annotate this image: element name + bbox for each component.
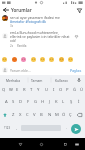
button[interactable]: Recent apps (59, 138, 71, 150)
button[interactable]: S (10, 96, 17, 107)
staticText: C (26, 112, 29, 118)
button[interactable]: Emoji reaction (10, 55, 19, 64)
button[interactable]: J (46, 96, 53, 107)
staticText: W (9, 87, 13, 93)
button[interactable]: O (57, 84, 64, 95)
staticText: D (19, 99, 23, 105)
button[interactable]: Shift (0, 109, 10, 120)
staticText: T (30, 87, 33, 93)
button[interactable]: Kullanıcı (49, 75, 73, 85)
staticText: Y (37, 87, 40, 93)
button[interactable]: Y (35, 84, 42, 95)
button[interactable]: Emoji reaction (66, 55, 75, 64)
staticText: F (27, 99, 30, 105)
button[interactable]: G (32, 96, 39, 107)
button[interactable]: Tamam (25, 75, 49, 85)
button[interactable]: Filter (73, 5, 85, 15)
button[interactable]: Send (71, 124, 81, 134)
button[interactable]: L (60, 96, 67, 107)
button[interactable]: Ş (68, 96, 75, 107)
button[interactable]: Emoji reaction (0, 55, 9, 64)
button[interactable]: W (7, 84, 14, 95)
staticText: J (49, 99, 51, 105)
staticText: X (19, 112, 22, 118)
staticText: cok! (10, 38, 17, 42)
staticText: Merhaba (6, 78, 20, 82)
button[interactable]: V (31, 109, 38, 120)
button[interactable]: I (50, 84, 57, 95)
staticText: R (23, 87, 26, 93)
button[interactable]: Like (73, 33, 80, 40)
button[interactable]: Merhaba (0, 75, 25, 85)
staticText: Ö (62, 112, 66, 118)
staticText: ellerink ve paylasim icin tebrikler niha… (10, 34, 70, 38)
button[interactable]: D (17, 96, 24, 107)
staticText: Ç (69, 112, 72, 118)
staticText: Ş (70, 99, 73, 105)
button[interactable]: sen ai ayse yasamarn ifadesi me (10, 15, 74, 28)
button[interactable]: Emoji reaction (57, 55, 66, 64)
staticText: M (55, 112, 59, 118)
button[interactable]: R (21, 84, 28, 95)
button[interactable]: N (46, 109, 53, 120)
button[interactable]: B (38, 109, 45, 120)
button[interactable]: Ğ (71, 84, 78, 95)
button[interactable]: Yorum ekle... (10, 68, 70, 73)
button[interactable]: Ü (78, 84, 85, 95)
button[interactable]: Backspace (74, 109, 85, 120)
button[interactable]: Comma (13, 123, 20, 132)
staticText: O (59, 87, 63, 93)
button[interactable]: M (53, 109, 60, 120)
button[interactable]: Back (14, 138, 26, 150)
button[interactable]: U (43, 84, 50, 95)
staticText: . (66, 125, 67, 130)
button[interactable]: E (14, 84, 21, 95)
staticText: 3s (10, 24, 14, 28)
staticText: #metafor #fotografcilik (10, 19, 47, 23)
staticText: P (66, 87, 69, 93)
staticText: S (12, 99, 15, 105)
button[interactable]: A (3, 96, 10, 107)
button[interactable]: F (25, 96, 32, 107)
staticText: sen ai ayse yasamarn ifadesi me (10, 15, 60, 19)
button[interactable]: Back (0, 5, 11, 15)
button[interactable]: Voice input (73, 75, 85, 85)
staticText: Kullanıcı (55, 78, 68, 82)
staticText: Yorumlar (11, 7, 32, 13)
staticText: L (62, 99, 65, 105)
button[interactable]: Q (0, 84, 7, 95)
button[interactable]: T (28, 84, 35, 95)
button[interactable]: P (64, 84, 71, 95)
button[interactable]: K (53, 96, 60, 107)
staticText: emLa Bunuhood muhtesemlee, hosandim (10, 30, 73, 34)
staticText: Q (2, 87, 6, 93)
button[interactable]: Ö (60, 109, 67, 120)
button[interactable]: Emoji reaction (19, 55, 28, 64)
button[interactable]: H (39, 96, 46, 107)
staticText: İ (78, 99, 80, 105)
button[interactable]: ?123 (1, 123, 13, 132)
staticText: G (34, 99, 38, 105)
staticText: A (5, 99, 8, 105)
button[interactable]: Switch keyboard (71, 138, 83, 150)
button[interactable]: Emoji reaction (29, 55, 38, 64)
staticText: Tamam (31, 78, 43, 82)
staticText: B (40, 112, 43, 118)
button[interactable]: Emoji reaction (47, 55, 56, 64)
button[interactable]: Emoji reaction (38, 55, 47, 64)
staticText: , (16, 125, 17, 130)
button[interactable]: İ (75, 96, 82, 107)
staticText: ?123 (4, 126, 11, 130)
button[interactable]: emLa Bunuhood muhtesemlee, hosandim (10, 30, 73, 48)
button[interactable]: Paylas (70, 68, 82, 73)
button[interactable]: Home (35, 138, 47, 150)
button[interactable]: Z (10, 109, 17, 120)
button[interactable]: Yanitla (17, 44, 27, 48)
staticText: H (41, 99, 45, 105)
button[interactable]: Ç (67, 109, 74, 120)
staticText: I (53, 87, 55, 93)
button[interactable]: C (24, 109, 31, 120)
button[interactable]: X (17, 109, 24, 120)
